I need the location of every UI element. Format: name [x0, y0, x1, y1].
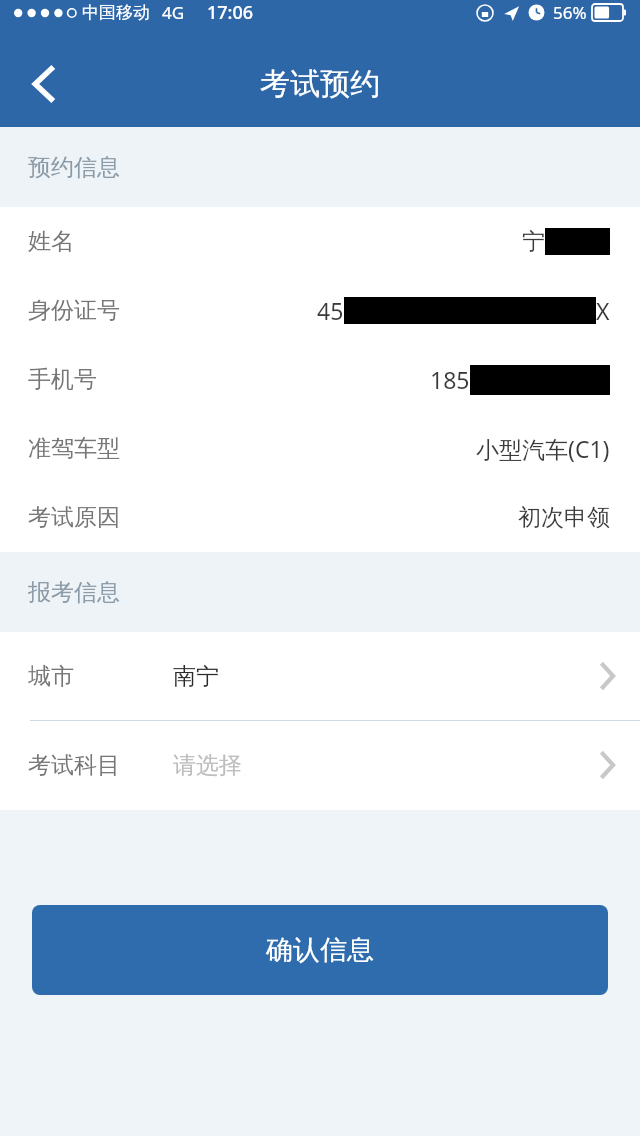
staticText: 宁	[522, 227, 545, 256]
staticText: 考试预约	[260, 65, 380, 103]
staticText: 考试原因	[28, 503, 120, 532]
staticText: 初次申领	[518, 503, 610, 532]
staticText: 确认信息	[266, 933, 374, 967]
staticText: 4G	[162, 1, 185, 24]
staticText: 小型汽车(C1)	[476, 433, 610, 464]
staticText: 预约信息	[28, 153, 120, 182]
staticText: 中国移动	[82, 2, 150, 23]
staticText: 姓名	[28, 227, 74, 256]
staticText: 考试科目	[28, 751, 120, 780]
staticText: 身份证号	[28, 296, 120, 325]
staticText: 185	[430, 364, 470, 395]
button[interactable]: 城市	[0, 632, 640, 720]
staticText: 56%	[553, 1, 587, 24]
staticText: 17:06	[207, 0, 254, 25]
button[interactable]: 确认信息	[32, 905, 608, 995]
staticText: 城市	[28, 662, 74, 691]
button[interactable]: Back	[12, 53, 74, 115]
staticText: 请选择	[173, 751, 242, 780]
staticText: 45	[317, 295, 344, 326]
staticText: 报考信息	[28, 578, 120, 607]
staticText: 手机号	[28, 365, 97, 394]
staticText: 南宁	[173, 662, 219, 691]
staticText: X	[596, 295, 610, 326]
button[interactable]: 考试科目	[0, 721, 640, 809]
staticText: 准驾车型	[28, 434, 120, 463]
